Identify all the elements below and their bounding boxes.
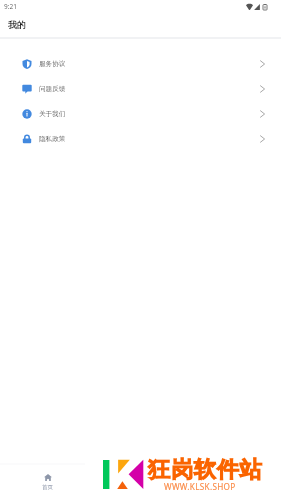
staticText: WWW.KLSK.SHOP — [164, 481, 236, 492]
staticText: 服务协议 — [39, 60, 66, 68]
button[interactable]: 首页 — [23, 464, 72, 500]
staticText: 关于我们 — [39, 110, 66, 118]
staticText: 隐私政策 — [39, 135, 66, 143]
button[interactable]: 关于我们 — [0, 101, 281, 126]
staticText: 首页 — [42, 484, 53, 491]
button[interactable]: 问题反馈 — [0, 76, 281, 101]
staticText: 狂岗软件站 — [148, 456, 263, 484]
staticText: 9:21 — [4, 2, 17, 11]
button[interactable]: 隐私政策 — [0, 126, 281, 151]
staticText: 问题反馈 — [39, 85, 66, 93]
other: 首页 — [44, 474, 52, 481]
staticText: 我的 — [8, 19, 26, 30]
button[interactable]: 服务协议 — [0, 51, 281, 76]
